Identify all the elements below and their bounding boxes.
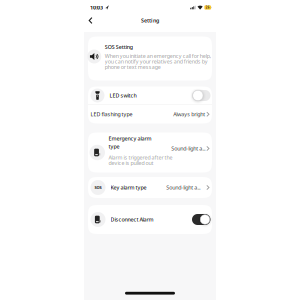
button[interactable]: LED switch bbox=[192, 90, 210, 101]
staticText: Key alarm type bbox=[110, 184, 146, 191]
staticText: Sound-light a... bbox=[171, 145, 205, 152]
staticText: SOS bbox=[94, 185, 101, 190]
staticText: Always bright bbox=[173, 111, 205, 118]
staticText: LED switch bbox=[109, 92, 136, 99]
staticText: SOS Setting bbox=[105, 43, 133, 50]
button[interactable]: Back bbox=[86, 15, 95, 26]
button[interactable]: SOS Setting bbox=[88, 36, 212, 80]
staticText: Alarm is triggered after the device is p… bbox=[108, 154, 172, 166]
staticText: When you initiate an emergency call for … bbox=[105, 52, 211, 70]
staticText: Setting bbox=[141, 17, 159, 24]
button[interactable]: LED flashing type bbox=[88, 105, 212, 123]
button[interactable]: Emergency alarm bbox=[88, 132, 212, 172]
staticText: Disconnect Alarm bbox=[110, 216, 153, 223]
staticText: type bbox=[108, 143, 119, 150]
staticText: Sound-light a... bbox=[166, 184, 200, 191]
button[interactable]: Disconnect Alarm bbox=[192, 214, 210, 225]
staticText: LED flashing type bbox=[90, 111, 132, 118]
staticText: 26 bbox=[206, 6, 210, 9]
button[interactable]: SOS bbox=[88, 177, 212, 198]
staticText: 10:03 bbox=[90, 4, 103, 11]
staticText: Emergency alarm bbox=[108, 135, 151, 142]
